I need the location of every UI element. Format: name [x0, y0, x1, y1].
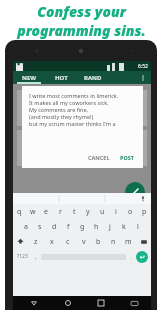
staticText: POST [120, 154, 134, 161]
staticText: . [130, 253, 132, 261]
button[interactable]: s [33, 219, 47, 234]
staticText: p [142, 207, 147, 217]
staticText: k [122, 222, 126, 232]
staticText: Confess your [37, 2, 126, 21]
staticText: u [100, 207, 105, 217]
staticText: t [73, 207, 76, 217]
staticText: g [80, 222, 85, 232]
staticText: f [67, 222, 70, 232]
button[interactable]: u [95, 204, 109, 219]
button[interactable]: r [53, 204, 67, 219]
button[interactable]: o [123, 204, 137, 219]
button[interactable]: e [39, 204, 53, 219]
button[interactable]: Shift [13, 234, 28, 249]
staticText: x [50, 237, 54, 247]
staticText: m [125, 237, 132, 247]
button[interactable]: f [61, 219, 75, 234]
button[interactable]: NEW [13, 71, 45, 84]
staticText: e [44, 207, 48, 217]
button[interactable]: POST [120, 154, 134, 161]
button[interactable]: j [103, 219, 117, 234]
staticText: I write most comments in limerick. [29, 92, 119, 99]
staticText: , [35, 253, 37, 261]
staticText: HOT [55, 74, 68, 82]
button[interactable]: Home [61, 296, 75, 310]
button[interactable]: q [13, 204, 26, 219]
button[interactable]: RAND [77, 71, 109, 84]
staticText: My comments are fine, [29, 106, 89, 113]
button[interactable]: p [137, 204, 151, 219]
staticText: o [128, 207, 133, 217]
button[interactable]: , [31, 249, 41, 264]
button[interactable]: Compose confession [125, 182, 145, 202]
button[interactable]: b [91, 234, 106, 249]
button[interactable]: Keyboard [127, 296, 141, 310]
staticText: d [52, 222, 57, 232]
button[interactable]: Back [27, 296, 41, 310]
button[interactable]: CANCEL [88, 154, 110, 161]
staticText: s [38, 222, 42, 232]
button[interactable]: x [44, 234, 60, 249]
staticText: (and mostly they rhyme!) [29, 113, 94, 120]
button[interactable] [17, 90, 147, 126]
staticText: RAND [84, 74, 102, 82]
staticText: q [17, 207, 22, 217]
button[interactable]: z [28, 234, 44, 249]
staticText: c [66, 237, 70, 247]
button[interactable]: h [89, 219, 103, 234]
button[interactable]: g [75, 219, 89, 234]
staticText: r [59, 207, 62, 217]
staticText: i [115, 207, 117, 217]
button[interactable]: t [67, 204, 81, 219]
staticText: j [109, 222, 111, 232]
button[interactable]: l [131, 219, 145, 234]
button[interactable]: ?123 [13, 249, 31, 264]
staticText: 6:52 [138, 63, 148, 70]
button[interactable]: v [76, 234, 91, 249]
staticText: y [86, 207, 90, 217]
staticText: w [30, 207, 36, 217]
staticText: h [94, 222, 99, 232]
staticText: but my scrum master thinks I'm a [29, 120, 116, 127]
button[interactable]: m [121, 234, 136, 249]
button[interactable]: i [109, 204, 123, 219]
staticText: NEW [22, 74, 37, 82]
staticText: b [96, 237, 101, 247]
staticText: CANCEL [88, 154, 110, 161]
button[interactable]: n [106, 234, 121, 249]
button[interactable]: w [26, 204, 39, 219]
button[interactable] [17, 130, 147, 166]
button[interactable]: k [117, 219, 131, 234]
button[interactable]: Enter [136, 251, 148, 263]
button[interactable]: More options [135, 71, 151, 84]
button[interactable]: Recents [94, 296, 108, 310]
staticText: It makes all my coworkers sick. [29, 99, 109, 106]
button[interactable]: y [81, 204, 95, 219]
button[interactable]: Backspace [136, 234, 151, 249]
button[interactable]: d [47, 219, 61, 234]
button[interactable]: . [126, 249, 136, 264]
button[interactable]: c [60, 234, 76, 249]
staticText: l [137, 222, 139, 232]
staticText: v [82, 237, 86, 247]
staticText: ?123 [17, 253, 28, 260]
staticText: programming sins. [17, 21, 146, 40]
staticText: z [34, 237, 38, 247]
staticText: n [111, 237, 116, 247]
staticText: a [24, 222, 28, 232]
button[interactable]: a [19, 219, 33, 234]
button[interactable]: HOT [45, 71, 77, 84]
